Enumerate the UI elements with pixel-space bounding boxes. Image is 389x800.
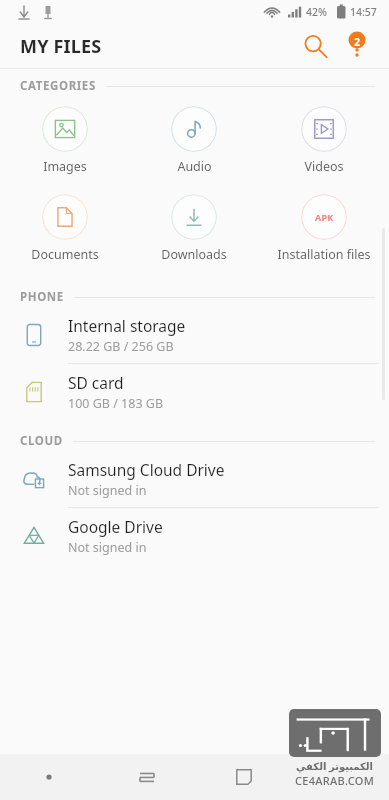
button[interactable]: Audio — [129, 102, 259, 179]
staticText: CLOUD — [20, 433, 63, 449]
staticText: 42% — [306, 5, 327, 19]
staticText: Google Drive — [68, 516, 163, 537]
button[interactable]: Search — [295, 26, 335, 66]
staticText: Documents — [31, 246, 99, 263]
staticText: Audio — [177, 158, 212, 175]
staticText: CE4ARAB.COM — [295, 773, 375, 788]
button[interactable]: Videos — [259, 102, 389, 179]
staticText: MY FILES — [20, 34, 102, 59]
staticText: 2 — [354, 35, 360, 49]
button[interactable]: More options — [337, 26, 377, 66]
button[interactable]: APK — [259, 190, 389, 267]
staticText: Not signed in — [68, 482, 147, 499]
button[interactable]: Documents — [0, 190, 129, 267]
staticText: Images — [43, 158, 87, 175]
button[interactable]: Downloads — [129, 190, 259, 267]
staticText: Internal storage — [68, 315, 186, 336]
button[interactable]: Home — [98, 754, 195, 800]
button[interactable]: Samsung Cloud Drive — [0, 451, 389, 507]
staticText: 28.22 GB / 256 GB — [68, 338, 174, 355]
staticText: CATEGORIES — [20, 78, 96, 94]
button[interactable]: Images — [0, 102, 129, 179]
staticText: APK — [315, 211, 334, 223]
button[interactable]: Back — [195, 754, 292, 800]
button[interactable]: Recents — [0, 754, 98, 800]
staticText: Samsung Cloud Drive — [68, 459, 225, 480]
staticText: Downloads — [161, 246, 227, 263]
staticText: الكمبيوتر الكفي — [296, 759, 374, 773]
staticText: Not signed in — [68, 539, 147, 556]
staticText: 100 GB / 183 GB — [68, 395, 164, 412]
button[interactable]: Google Drive — [0, 508, 389, 564]
button[interactable]: Internal storage — [0, 307, 389, 363]
button[interactable]: SD card — [0, 364, 389, 420]
staticText: Videos — [304, 158, 344, 175]
staticText: 14:57 — [350, 5, 377, 19]
staticText: PHONE — [20, 289, 64, 305]
staticText: Installation files — [277, 246, 371, 263]
staticText: SD card — [68, 372, 124, 393]
